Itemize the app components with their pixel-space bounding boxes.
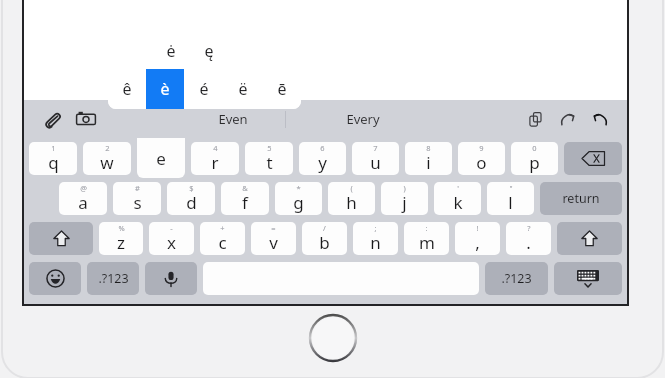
button[interactable]: #	[113, 182, 161, 215]
button[interactable]: 7	[352, 142, 399, 175]
button[interactable]: %	[99, 222, 143, 255]
staticText: a	[78, 191, 88, 214]
staticText: 8	[426, 143, 431, 153]
button[interactable]: Shift	[29, 222, 93, 255]
staticText: p	[529, 151, 540, 174]
button[interactable]: -	[149, 222, 194, 255]
button[interactable]: Camera	[72, 105, 100, 133]
staticText: 4	[213, 143, 218, 153]
button[interactable]: Even	[210, 106, 256, 132]
staticText: h	[346, 191, 357, 214]
button[interactable]: Backspace	[564, 142, 622, 175]
staticText: 9	[479, 143, 484, 153]
staticText: /	[323, 223, 326, 233]
button[interactable]: @	[59, 182, 107, 215]
button[interactable]: é	[184, 69, 223, 109]
button[interactable]: "	[487, 182, 534, 215]
button[interactable]: e	[137, 138, 185, 178]
button[interactable]: 2	[83, 142, 131, 175]
button[interactable]: Emoji	[29, 262, 81, 295]
staticText: Even	[218, 110, 248, 128]
staticText: )	[403, 183, 406, 193]
button[interactable]: ē	[262, 69, 301, 109]
button[interactable]: ę	[190, 33, 228, 69]
staticText: t	[266, 151, 273, 174]
button[interactable]: ?	[506, 222, 551, 255]
staticText: ë	[238, 78, 248, 100]
button[interactable]: Redo	[555, 106, 581, 132]
staticText: 5	[267, 143, 272, 153]
button[interactable]: *	[275, 182, 322, 215]
staticText: ę	[204, 40, 214, 62]
staticText: -	[170, 223, 173, 233]
staticText: e	[156, 147, 166, 170]
staticText: s	[133, 191, 142, 214]
staticText: &	[242, 183, 248, 193]
staticText: .?123	[98, 270, 129, 287]
staticText: @	[80, 183, 87, 193]
button[interactable]: 8	[405, 142, 452, 175]
button[interactable]: =	[251, 222, 296, 255]
button[interactable]: Every	[338, 106, 388, 132]
button[interactable]: :	[404, 222, 449, 255]
button[interactable]: )	[381, 182, 428, 215]
staticText: b	[319, 231, 330, 254]
staticText: '	[457, 183, 459, 193]
staticText: k	[453, 191, 463, 214]
staticText: g	[293, 191, 304, 214]
staticText: Every	[346, 110, 380, 128]
button[interactable]: Home	[309, 314, 357, 362]
button[interactable]: ė	[152, 33, 190, 69]
button[interactable]: /	[302, 222, 347, 255]
button[interactable]: 6	[299, 142, 346, 175]
staticText: q	[48, 151, 59, 174]
button[interactable]: Numbers and symbols	[485, 262, 548, 295]
staticText: #	[135, 183, 140, 193]
button[interactable]: Shift	[557, 222, 622, 255]
staticText: 2	[105, 143, 110, 153]
staticText: ê	[122, 78, 132, 100]
button[interactable]: 1	[29, 142, 77, 175]
staticText: z	[117, 231, 125, 254]
staticText: !	[476, 223, 479, 233]
button[interactable]: 4	[191, 142, 239, 175]
staticText: d	[186, 191, 197, 214]
button[interactable]: 0	[511, 142, 558, 175]
button[interactable]: ;	[353, 222, 398, 255]
staticText: ē	[277, 78, 287, 100]
button[interactable]: Hide keyboard	[554, 262, 622, 295]
button[interactable]: +	[200, 222, 245, 255]
button[interactable]: '	[434, 182, 481, 215]
button[interactable]: 5	[245, 142, 293, 175]
button[interactable]: Copy	[523, 106, 549, 132]
staticText: =	[271, 223, 276, 233]
button[interactable]: $	[167, 182, 215, 215]
button[interactable]: è	[146, 69, 184, 109]
staticText: ?	[527, 223, 531, 233]
staticText: "	[509, 183, 513, 193]
staticText: .	[526, 231, 531, 254]
button[interactable]: !	[455, 222, 500, 255]
staticText: l	[508, 191, 513, 214]
staticText: 6	[320, 143, 325, 153]
staticText: ;	[374, 223, 377, 233]
button[interactable]: &	[221, 182, 269, 215]
button[interactable]: ê	[108, 69, 146, 109]
button[interactable]: (	[328, 182, 375, 215]
staticText: c	[218, 231, 227, 254]
staticText: ,	[475, 231, 480, 254]
staticText: +	[220, 223, 225, 233]
staticText: j	[402, 191, 407, 214]
button[interactable]: Undo	[587, 106, 613, 132]
button[interactable]: ë	[223, 69, 262, 109]
staticText: m	[419, 231, 435, 254]
button[interactable]: Attach file	[38, 105, 66, 133]
button[interactable]: 9	[458, 142, 505, 175]
staticText: w	[100, 151, 114, 174]
staticText: i	[426, 151, 431, 174]
button[interactable]: Numbers and symbols	[87, 262, 139, 295]
staticText: 7	[373, 143, 378, 153]
button[interactable]: Return	[540, 182, 622, 215]
button[interactable]: Dictate	[145, 262, 197, 295]
